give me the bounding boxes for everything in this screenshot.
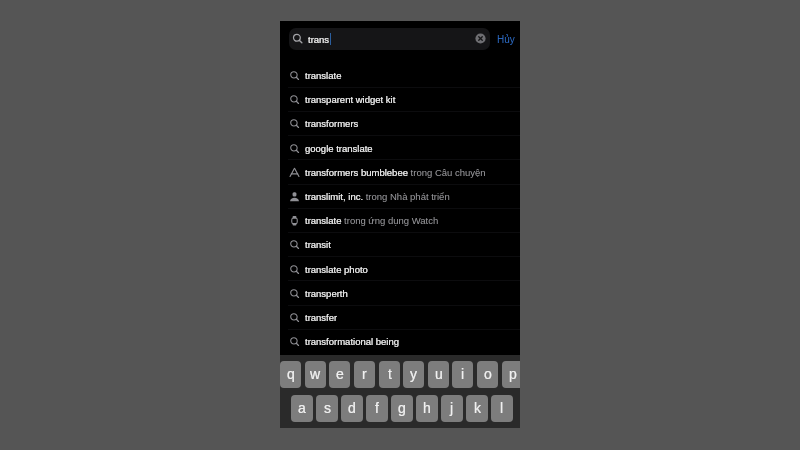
staticText: o xyxy=(484,366,492,382)
button[interactable]: a xyxy=(291,395,313,422)
staticText: t xyxy=(388,366,392,382)
button[interactable]: l xyxy=(491,395,513,422)
staticText: Hủy xyxy=(497,34,515,45)
staticText: k xyxy=(474,400,481,416)
button[interactable]: i xyxy=(452,361,473,388)
button[interactable]: transparent widget kit xyxy=(280,87,520,111)
staticText: i xyxy=(461,366,465,382)
button[interactable]: j xyxy=(441,395,463,422)
button[interactable]: google translate xyxy=(280,136,520,160)
button[interactable]: s xyxy=(316,395,338,422)
staticText: f xyxy=(375,400,379,416)
staticText: translate trong ứng dụng Watch xyxy=(305,215,439,226)
button[interactable]: d xyxy=(341,395,363,422)
button[interactable]: t xyxy=(379,361,400,388)
button[interactable]: translimit, inc. trong Nhà phát triển xyxy=(280,184,520,208)
button[interactable]: trans xyxy=(289,28,490,50)
staticText: r xyxy=(362,366,367,382)
staticText: translate photo xyxy=(305,264,368,275)
button[interactable]: Hủy xyxy=(495,28,516,50)
button[interactable]: k xyxy=(466,395,488,422)
staticText: transformational being xyxy=(305,336,399,347)
button[interactable]: o xyxy=(477,361,498,388)
staticText: p xyxy=(509,366,517,382)
button[interactable]: p xyxy=(502,361,520,388)
button[interactable]: r xyxy=(354,361,375,388)
button[interactable]: translate trong ứng dụng Watch xyxy=(280,208,520,232)
staticText: j xyxy=(450,400,454,416)
staticText: transparent widget kit xyxy=(305,94,396,105)
staticText: h xyxy=(423,400,431,416)
staticText: google translate xyxy=(305,143,373,154)
staticText: e xyxy=(336,366,344,382)
button[interactable]: transfer xyxy=(280,305,520,329)
staticText: d xyxy=(348,400,356,416)
staticText: q xyxy=(287,366,295,382)
staticText: transperth xyxy=(305,288,348,299)
staticText: transit xyxy=(305,239,331,250)
staticText: u xyxy=(435,366,443,382)
button[interactable]: f xyxy=(366,395,388,422)
staticText: y xyxy=(410,366,417,382)
button[interactable]: h xyxy=(416,395,438,422)
button[interactable]: q xyxy=(280,361,301,388)
button[interactable]: w xyxy=(305,361,326,388)
staticText: w xyxy=(310,366,321,382)
staticText: translimit, inc. trong Nhà phát triển xyxy=(305,191,450,202)
button[interactable]: translate photo xyxy=(280,257,520,281)
staticText: translate xyxy=(305,70,342,81)
button[interactable]: transformational being xyxy=(280,329,520,353)
staticText: s xyxy=(324,400,331,416)
button[interactable]: e xyxy=(329,361,350,388)
button[interactable]: g xyxy=(391,395,413,422)
button[interactable]: transformers xyxy=(280,111,520,135)
button[interactable]: u xyxy=(428,361,449,388)
staticText: a xyxy=(298,400,306,416)
staticText: transfer xyxy=(305,312,338,323)
button[interactable]: translate xyxy=(280,63,520,87)
button[interactable]: transformers bumblebee trong Câu chuyện xyxy=(280,160,520,184)
staticText: g xyxy=(398,400,406,416)
button[interactable]: Clear text xyxy=(474,32,487,45)
button[interactable]: transit xyxy=(280,232,520,256)
staticText: transformers bumblebee trong Câu chuyện xyxy=(305,167,486,178)
staticText: trans xyxy=(308,34,330,45)
staticText: l xyxy=(500,400,504,416)
staticText: transformers xyxy=(305,118,359,129)
button[interactable]: y xyxy=(403,361,424,388)
button[interactable]: transperth xyxy=(280,281,520,305)
